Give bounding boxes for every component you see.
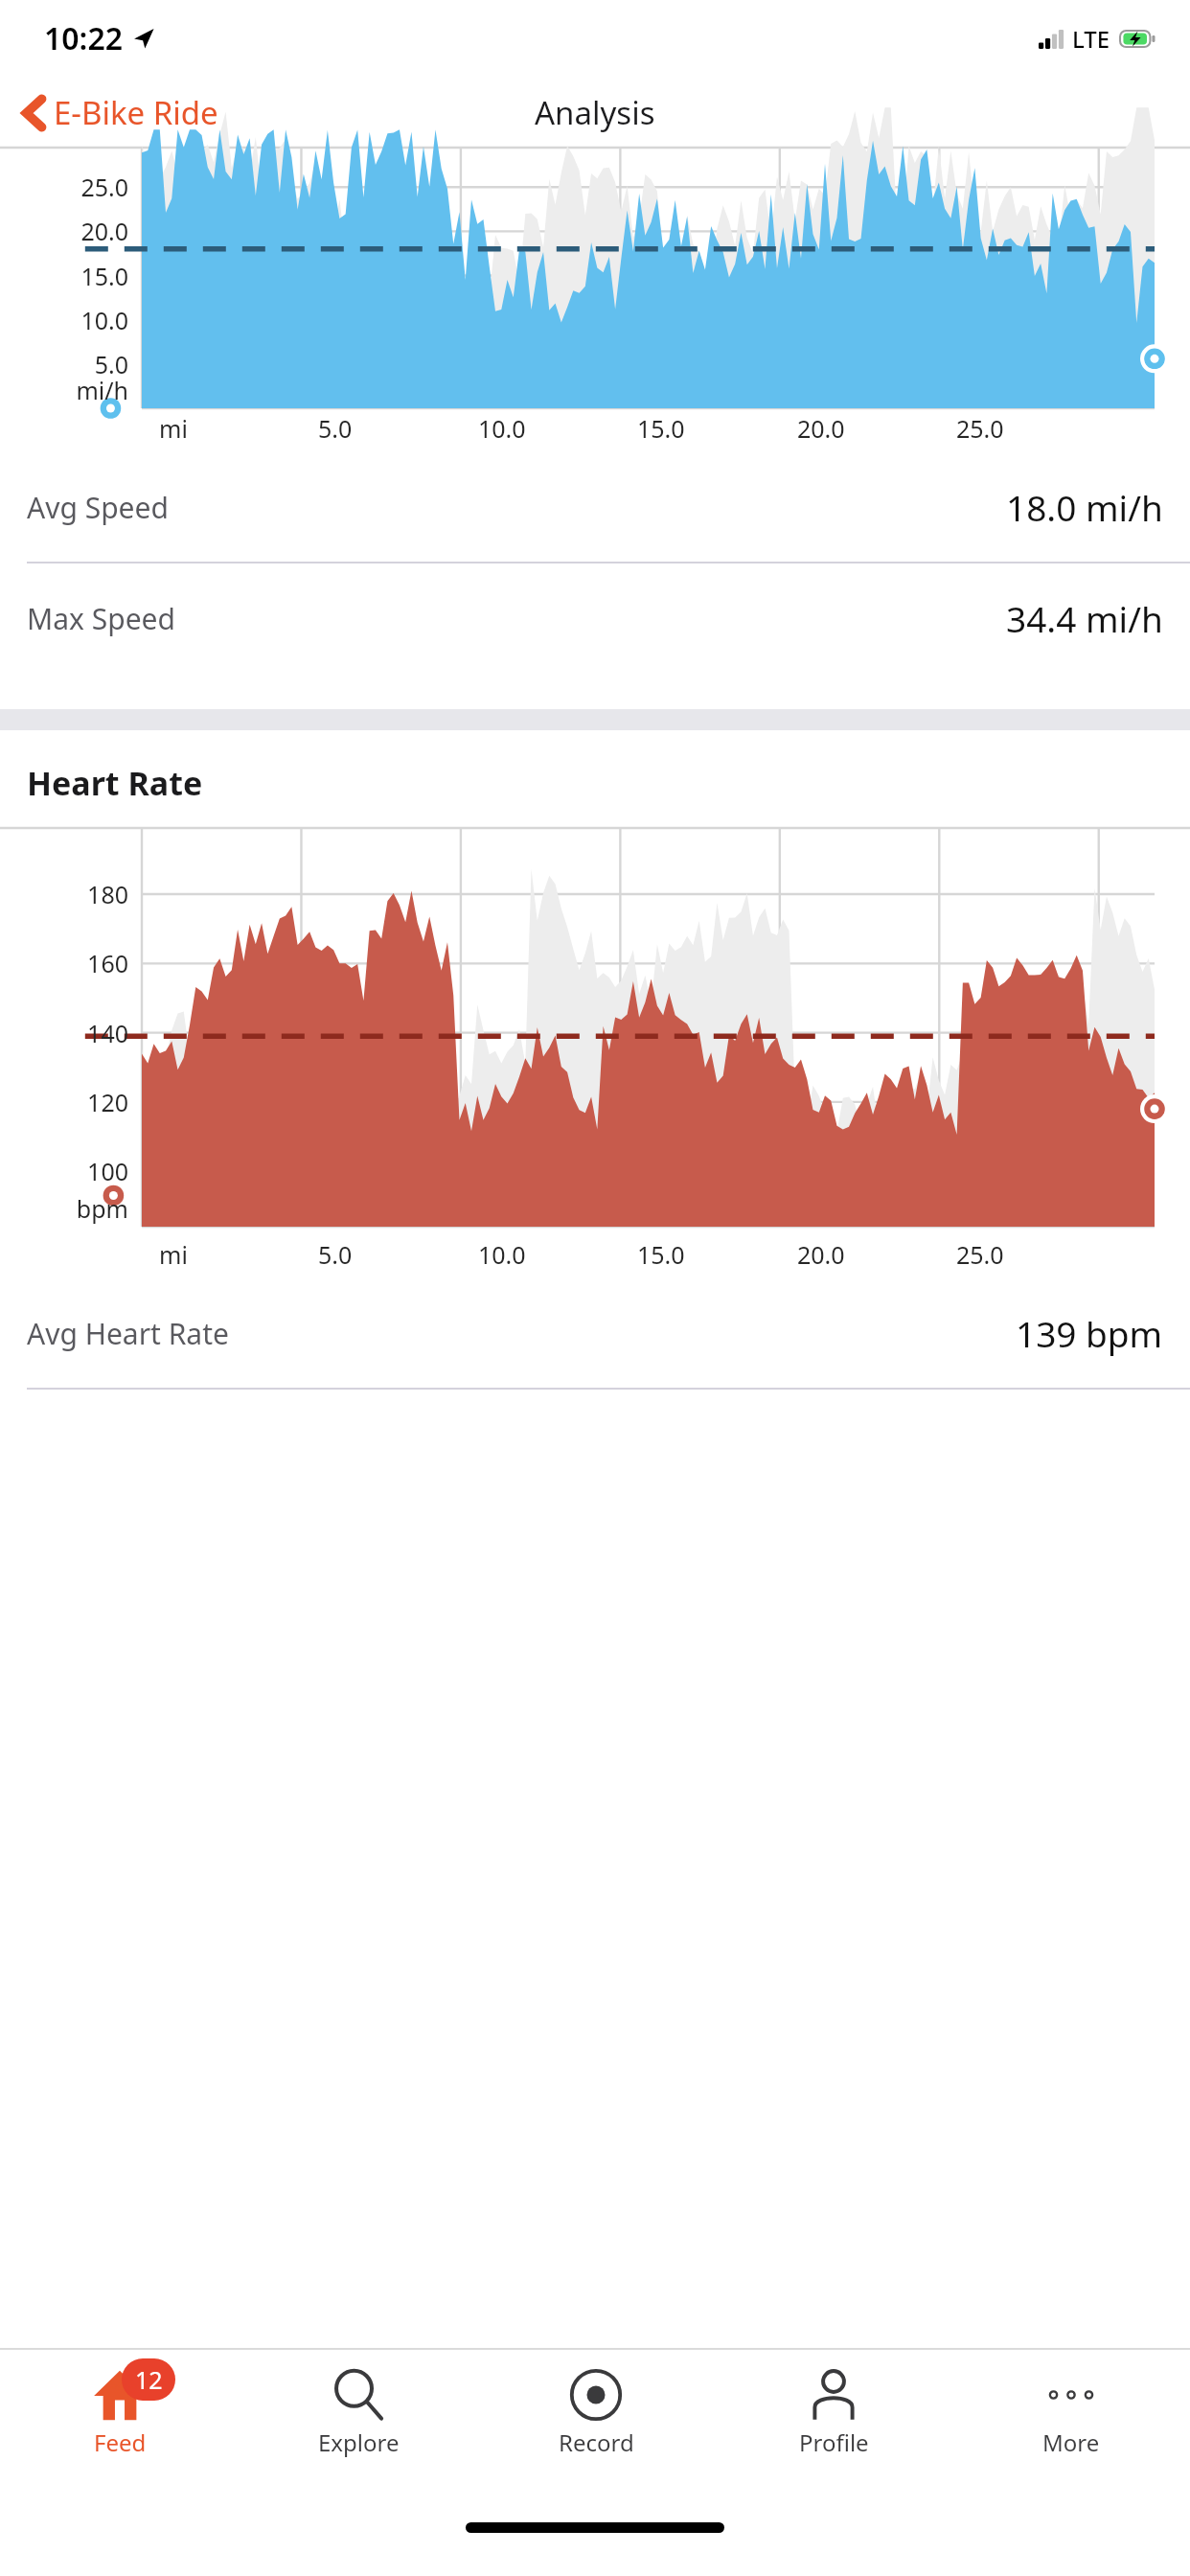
staticText: Max Speed <box>27 599 175 638</box>
staticText: Heart Rate <box>27 761 203 805</box>
staticText: 10:22 <box>44 17 124 59</box>
staticText: Record <box>559 2426 634 2458</box>
button[interactable]: Explore <box>239 2350 477 2494</box>
staticText: 10.0 <box>478 1238 526 1271</box>
staticText: 139 bpm <box>1016 1309 1163 1357</box>
staticText: Avg Heart Rate <box>27 1314 229 1353</box>
staticText: LTE <box>1072 23 1110 55</box>
staticText: 10.0 <box>478 412 526 445</box>
staticText: 140 <box>21 1017 128 1049</box>
staticText: mi/h <box>21 374 128 406</box>
staticText: bpm <box>21 1192 128 1225</box>
staticText: 5.0 <box>21 348 128 380</box>
staticText: Profile <box>799 2426 869 2458</box>
staticText: 25.0 <box>956 1238 1004 1271</box>
staticText: 180 <box>21 878 128 910</box>
staticText: Explore <box>318 2426 400 2458</box>
staticText: 20.0 <box>797 1238 845 1271</box>
staticText: 15.0 <box>21 260 128 292</box>
staticText: 5.0 <box>318 1238 353 1271</box>
button[interactable]: Avg Speed <box>0 452 1190 562</box>
staticText: Avg Speed <box>27 488 169 527</box>
staticText: 34.4 mi/h <box>1006 594 1163 642</box>
button[interactable]: Record <box>477 2350 715 2494</box>
staticText: 160 <box>21 947 128 979</box>
staticText: Feed <box>94 2426 147 2458</box>
staticText: More <box>1042 2426 1100 2458</box>
staticText: 15.0 <box>637 1238 685 1271</box>
staticText: 5.0 <box>318 412 353 445</box>
button[interactable]: More <box>952 2350 1190 2494</box>
staticText: 25.0 <box>956 412 1004 445</box>
button[interactable]: E-Bike Ride <box>0 83 232 142</box>
staticText: 10.0 <box>21 304 128 336</box>
button[interactable]: Feed <box>0 2350 239 2494</box>
button[interactable]: Max Speed <box>0 563 1190 673</box>
staticText: 15.0 <box>637 412 685 445</box>
button[interactable]: Profile <box>715 2350 952 2494</box>
staticText: 25.0 <box>21 171 128 203</box>
staticText: 20.0 <box>21 215 128 247</box>
button[interactable]: Avg Heart Rate <box>0 1278 1190 1388</box>
staticText: 20.0 <box>797 412 845 445</box>
staticText: mi <box>159 412 188 445</box>
staticText: E-Bike Ride <box>54 91 218 134</box>
staticText: 100 <box>21 1155 128 1187</box>
staticText: 120 <box>21 1086 128 1118</box>
staticText: Analysis <box>535 91 655 134</box>
staticText: mi <box>159 1238 188 1271</box>
staticText: 18.0 mi/h <box>1006 483 1163 531</box>
staticText: 12 <box>135 2363 163 2396</box>
